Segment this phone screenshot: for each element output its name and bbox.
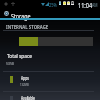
staticText: AM	[92, 2, 98, 8]
staticText: Total space	[7, 53, 33, 60]
staticText: INTERNAL STORAGE	[6, 24, 49, 31]
staticText: 11:04	[78, 1, 92, 9]
staticText: 132MB	[20, 82, 29, 87]
staticText: Apps	[21, 75, 29, 81]
staticText: 503MB	[6, 61, 15, 66]
staticText: Storage	[11, 12, 31, 22]
staticText: 25%	[49, 1, 57, 8]
button[interactable]: Apps	[0, 72, 100, 91]
other: Settings app icon	[4, 11, 9, 16]
button[interactable]: Settings app icon	[0, 8, 100, 18]
staticText: Available	[21, 95, 35, 100]
button[interactable]: Available	[0, 92, 100, 100]
